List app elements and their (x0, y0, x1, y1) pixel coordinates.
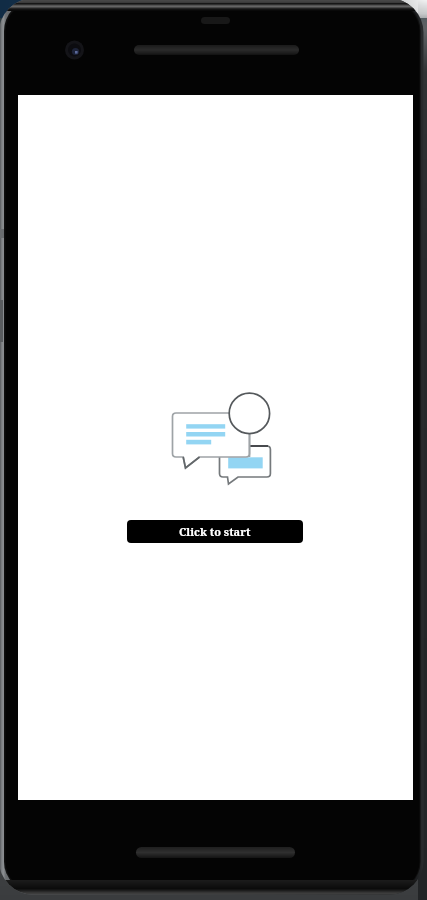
other: Chat conversation illustration (18, 95, 413, 800)
staticText: Click to start (179, 524, 251, 539)
button[interactable]: Click to start (127, 520, 303, 543)
